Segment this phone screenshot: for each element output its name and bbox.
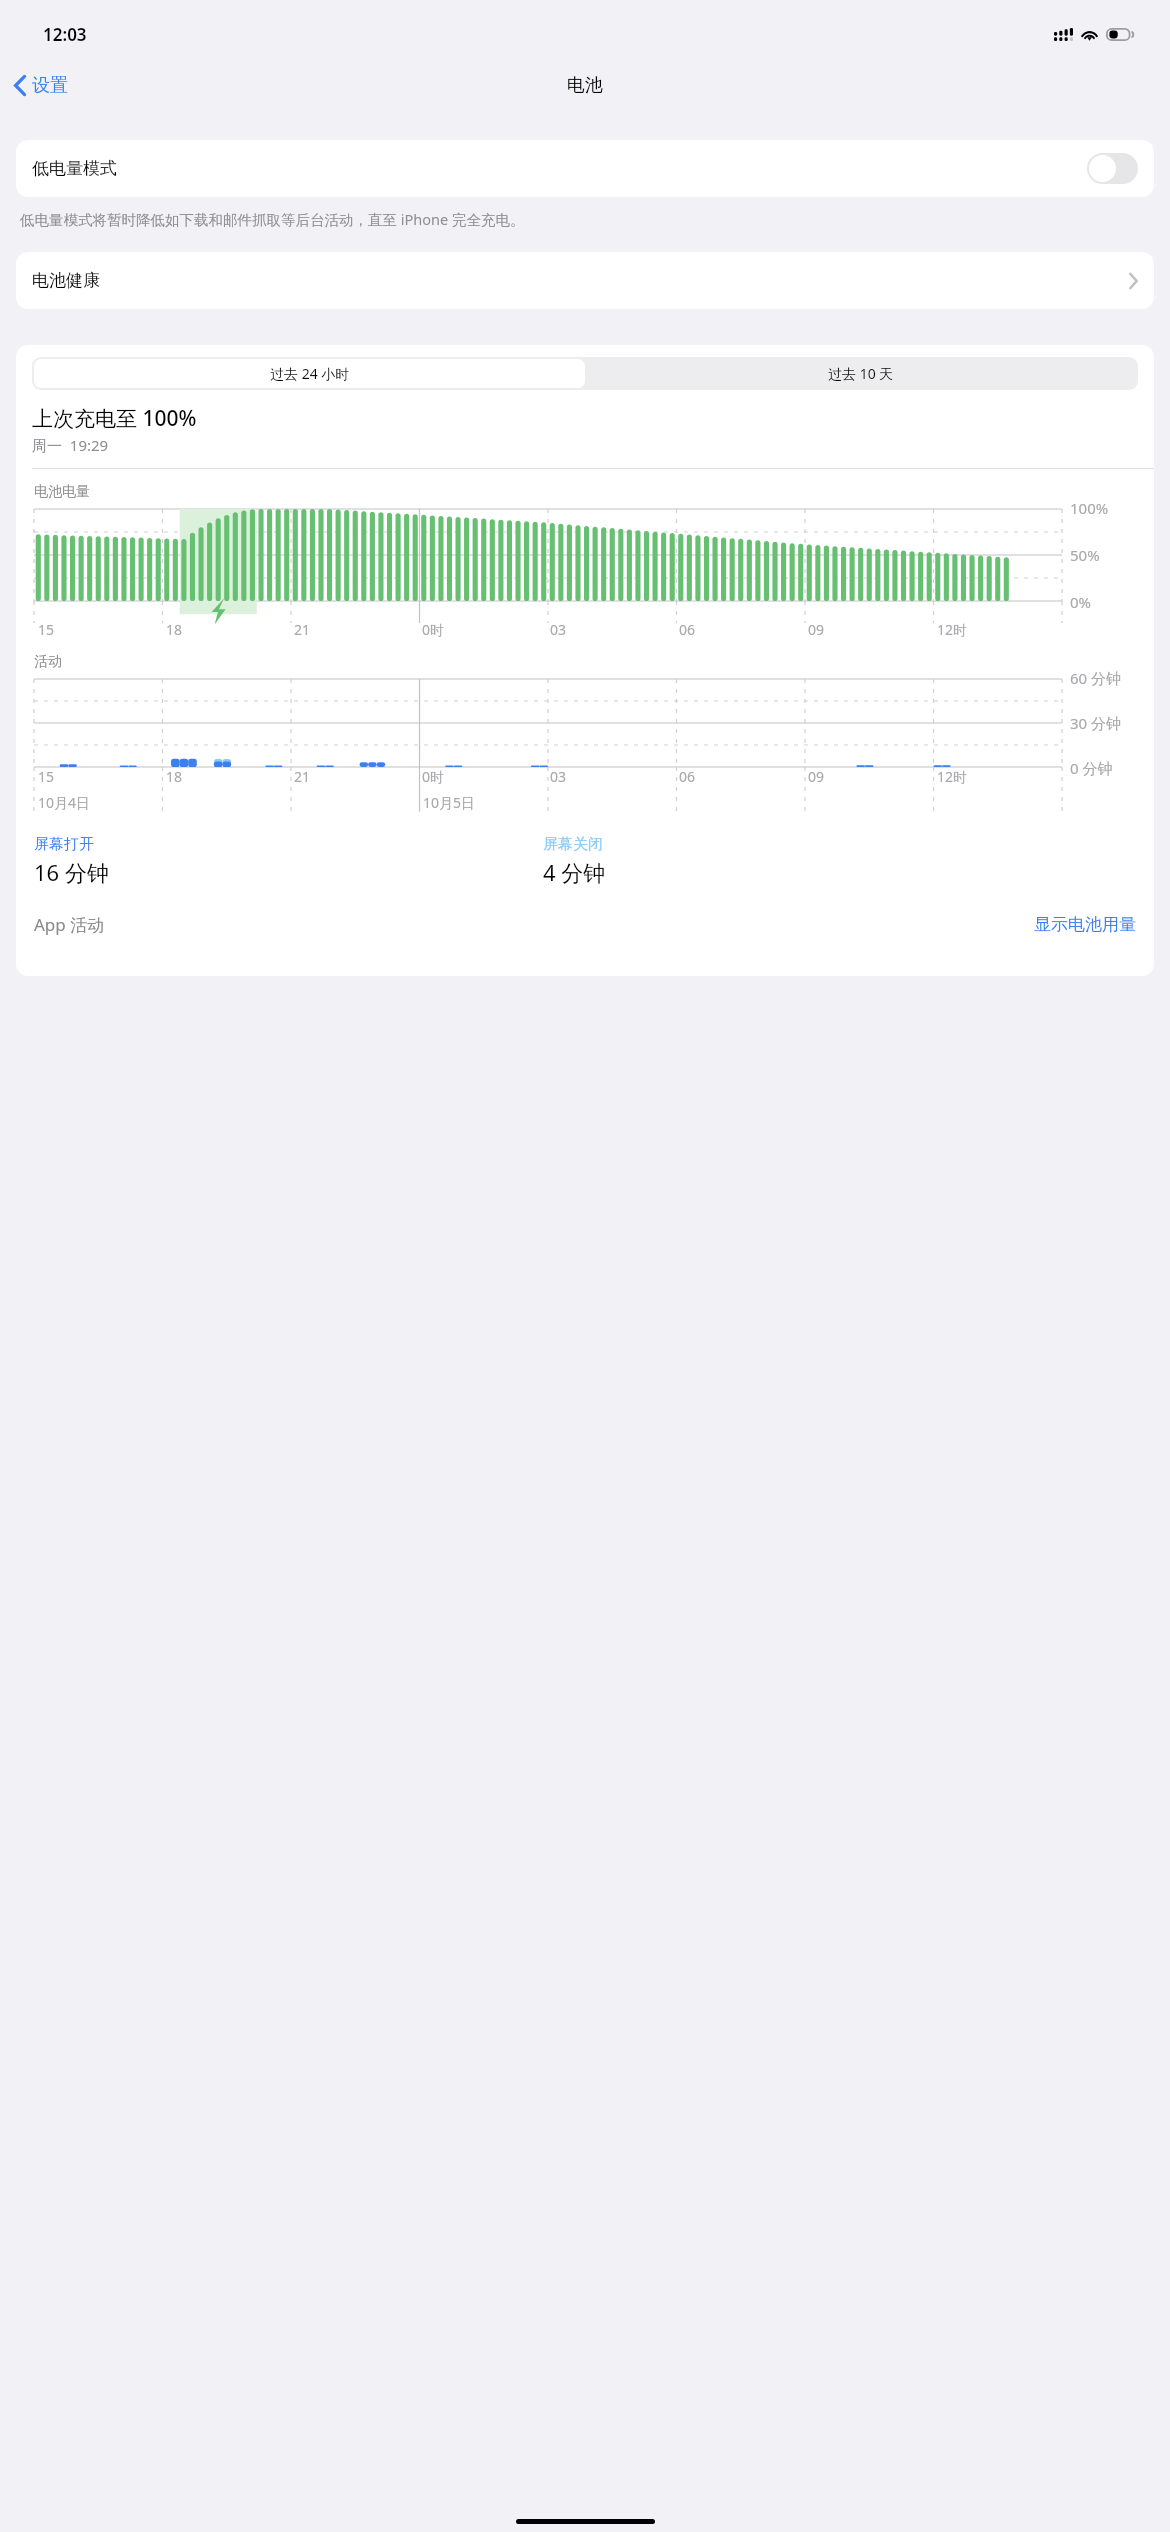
button[interactable]: 过去 10 天 (585, 359, 1136, 388)
staticText: 09 (808, 620, 825, 639)
staticText: 03 (550, 620, 567, 639)
staticText: 30 分钟 (1070, 713, 1122, 733)
button[interactable]: 屏幕关闭 (543, 835, 1154, 887)
staticText: 0% (1070, 592, 1092, 612)
staticText: 03 (550, 767, 567, 786)
staticText: 12:03 (43, 23, 87, 46)
button[interactable]: 显示电池用量 (1034, 914, 1136, 935)
button[interactable]: 低电量模式 (16, 140, 1154, 197)
staticText: 50% (1070, 545, 1100, 565)
staticText: 上次充电至 100% (32, 404, 197, 433)
staticText: 过去 24 小时 (270, 364, 350, 383)
button[interactable]: 设置 (6, 68, 76, 103)
staticText: 0 分钟 (1070, 758, 1113, 778)
staticText: 15 (38, 767, 55, 786)
staticText: 18 (166, 620, 183, 639)
staticText: 4 分钟 (543, 857, 606, 887)
staticText: 06 (679, 620, 696, 639)
staticText: 屏幕关闭 (543, 835, 603, 854)
staticText: 设置 (32, 74, 68, 97)
staticText: 09 (808, 767, 825, 786)
button[interactable]: 屏幕打开 (34, 835, 543, 887)
staticText: App 活动 (34, 913, 105, 936)
staticText: 21 (294, 620, 311, 639)
staticText: 屏幕打开 (34, 835, 94, 854)
staticText: 电池电量 (34, 483, 90, 501)
staticText: 15 (38, 620, 55, 639)
staticText: 过去 10 天 (828, 364, 894, 383)
button[interactable]: Low Power Mode toggle (1087, 153, 1138, 184)
staticText: 100% (1070, 498, 1109, 518)
staticText: 10月4日 (38, 793, 91, 812)
button[interactable]: 电池健康 (16, 252, 1154, 309)
staticText: 0时 (422, 620, 445, 639)
staticText: 0时 (422, 767, 445, 786)
staticText: 12时 (937, 767, 968, 786)
staticText: 电池 (567, 74, 603, 97)
staticText: 10月5日 (423, 793, 476, 812)
staticText: 低电量模式 (32, 158, 117, 179)
staticText: 18 (166, 767, 183, 786)
staticText: 16 分钟 (34, 857, 109, 887)
staticText: 电池健康 (32, 270, 100, 291)
staticText: 低电量模式将暂时降低如下载和邮件抓取等后台活动，直至 iPhone 完全充电。 (20, 209, 525, 229)
staticText: 60 分钟 (1070, 668, 1122, 688)
staticText: 06 (679, 767, 696, 786)
staticText: 21 (294, 767, 311, 786)
button[interactable]: 过去 24 小时 (34, 359, 585, 388)
staticText: 周一 19:29 (32, 435, 109, 455)
staticText: 活动 (34, 653, 62, 671)
staticText: 12时 (937, 620, 968, 639)
